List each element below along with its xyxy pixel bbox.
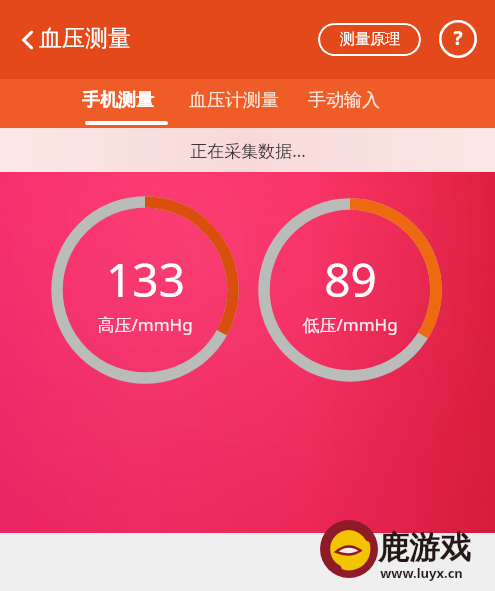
- button[interactable]: Help: [436, 17, 480, 61]
- staticText: 133: [106, 248, 185, 311]
- staticText: 89: [324, 248, 377, 311]
- button[interactable]: 测量原理: [318, 23, 421, 56]
- staticText: 高压/mmHg: [97, 313, 193, 336]
- staticText: 低压/mmHg: [302, 313, 398, 336]
- staticText: 鹿游戏: [378, 528, 471, 567]
- staticText: 血压测量: [39, 24, 131, 53]
- button[interactable]: Back: [6, 18, 50, 62]
- button[interactable]: 血压计测量: [185, 79, 283, 128]
- button[interactable]: 手动输入: [304, 79, 384, 128]
- staticText: 正在采集数据...: [190, 139, 306, 162]
- staticText: 血压计测量: [189, 89, 279, 112]
- staticText: ?: [453, 25, 463, 51]
- staticText: 测量原理: [340, 30, 400, 49]
- staticText: 手动输入: [308, 89, 380, 112]
- button[interactable]: 手机测量: [72, 79, 164, 128]
- staticText: www.luyx.cn: [380, 564, 463, 582]
- staticText: 手机测量: [82, 89, 154, 112]
